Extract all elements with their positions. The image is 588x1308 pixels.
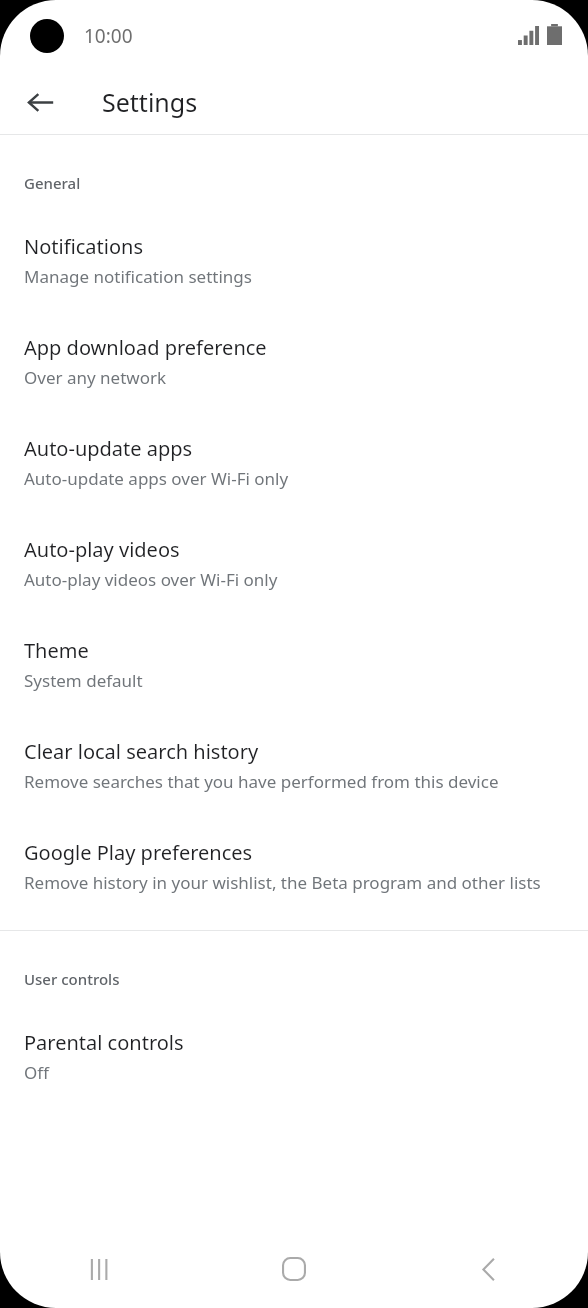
staticText: Settings [102, 85, 198, 119]
staticText: Auto-play videos [24, 536, 180, 563]
staticText: Google Play preferences [24, 839, 253, 866]
staticText: Theme [24, 637, 89, 664]
staticText: Auto-update apps [24, 435, 193, 462]
staticText: Parental controls [24, 1029, 184, 1056]
staticText: System default [24, 669, 143, 692]
button[interactable]: Home [266, 1241, 322, 1297]
button[interactable]: Parental controls [0, 989, 588, 1084]
button[interactable]: Back [460, 1241, 516, 1297]
button[interactable]: Auto-update apps [0, 389, 588, 490]
staticText: Over any network [24, 366, 167, 389]
button[interactable]: Theme [0, 591, 588, 692]
button[interactable]: Google Play preferences [0, 793, 588, 894]
button[interactable]: Back [14, 76, 66, 128]
staticText: Auto-play videos over Wi-Fi only [24, 568, 278, 591]
staticText: Notifications [24, 233, 143, 260]
button[interactable]: Notifications [0, 193, 588, 288]
staticText: Remove history in your wishlist, the Bet… [24, 871, 541, 894]
button[interactable]: Auto-play videos [0, 490, 588, 591]
staticText: App download preference [24, 334, 267, 361]
staticText: Off [24, 1061, 49, 1084]
button[interactable]: Recent apps [72, 1241, 128, 1297]
staticText: User controls [24, 969, 564, 989]
staticText: Auto-update apps over Wi-Fi only [24, 467, 289, 490]
staticText: General [24, 173, 564, 193]
button[interactable]: Clear local search history [0, 692, 588, 793]
staticText: Clear local search history [24, 738, 259, 765]
button[interactable]: App download preference [0, 288, 588, 389]
staticText: Remove searches that you have performed … [24, 770, 499, 793]
staticText: Manage notification settings [24, 265, 252, 288]
staticText: 10:00 [84, 23, 133, 49]
